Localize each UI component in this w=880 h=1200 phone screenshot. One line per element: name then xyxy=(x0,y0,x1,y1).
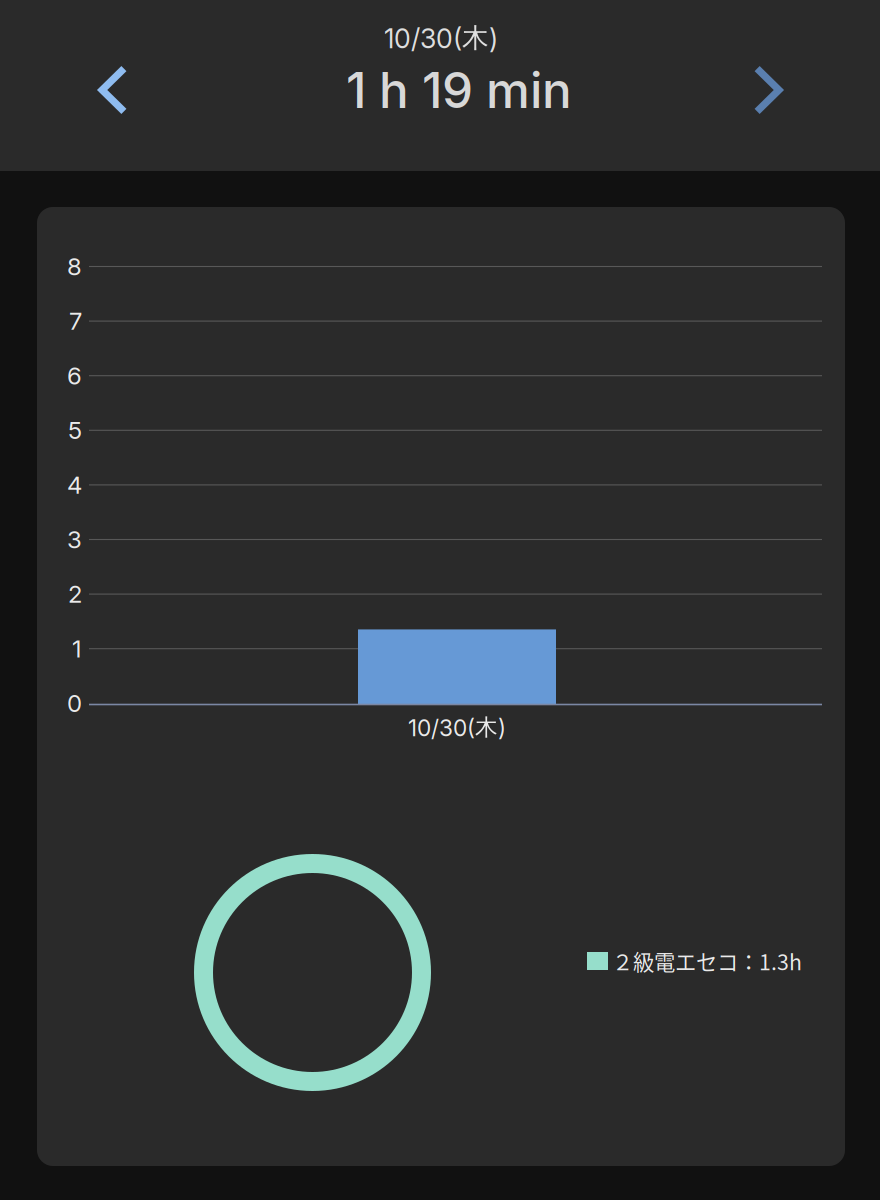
button[interactable]: Previous day xyxy=(69,46,157,134)
staticText: 1 h 19 min xyxy=(346,60,572,120)
staticText: 7 xyxy=(69,307,82,336)
staticText: 10/30(木) xyxy=(408,713,506,742)
staticText: ２級電エセコ：1.3h xyxy=(612,946,802,976)
staticText: 10/30(木) xyxy=(384,21,498,55)
staticText: 2 xyxy=(68,580,82,609)
staticText: 8 xyxy=(67,252,82,281)
staticText: 6 xyxy=(67,361,82,390)
staticText: 1 xyxy=(72,634,82,663)
button[interactable]: Next day xyxy=(724,46,812,134)
staticText: 0 xyxy=(67,689,82,718)
staticText: 3 xyxy=(67,525,82,554)
staticText: 4 xyxy=(67,470,82,499)
staticText: 5 xyxy=(68,416,82,445)
